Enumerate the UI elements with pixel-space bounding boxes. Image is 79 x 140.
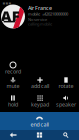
staticText: AF [1,6,20,25]
staticText: ▪▪▪ [2,1,11,5]
staticText: No service [28,17,47,22]
staticText: end call [30,121,48,128]
staticText: mobile +420210000000 [28,11,68,17]
button[interactable]: end call [0,112,79,130]
staticText: record [5,68,21,75]
button[interactable]: hold [0,93,26,109]
staticText: keypad [31,101,49,108]
staticText: hold [8,101,18,108]
button[interactable]: rotate [53,75,79,91]
button[interactable]: add call [27,75,53,91]
button[interactable]: Search [53,130,79,140]
staticText: add call [31,82,49,90]
button[interactable]: keypad [27,93,53,109]
staticText: rotate [58,82,73,90]
button[interactable]: Back [0,130,26,140]
staticText: mute [6,82,19,90]
button[interactable]: mute [0,75,26,91]
staticText: speaker [56,101,76,108]
button[interactable]: record [0,60,26,76]
button[interactable]: Start [26,130,53,140]
staticText: calling mobile [28,21,52,27]
staticText: Air France [28,4,52,12]
button[interactable]: speaker [53,93,79,109]
